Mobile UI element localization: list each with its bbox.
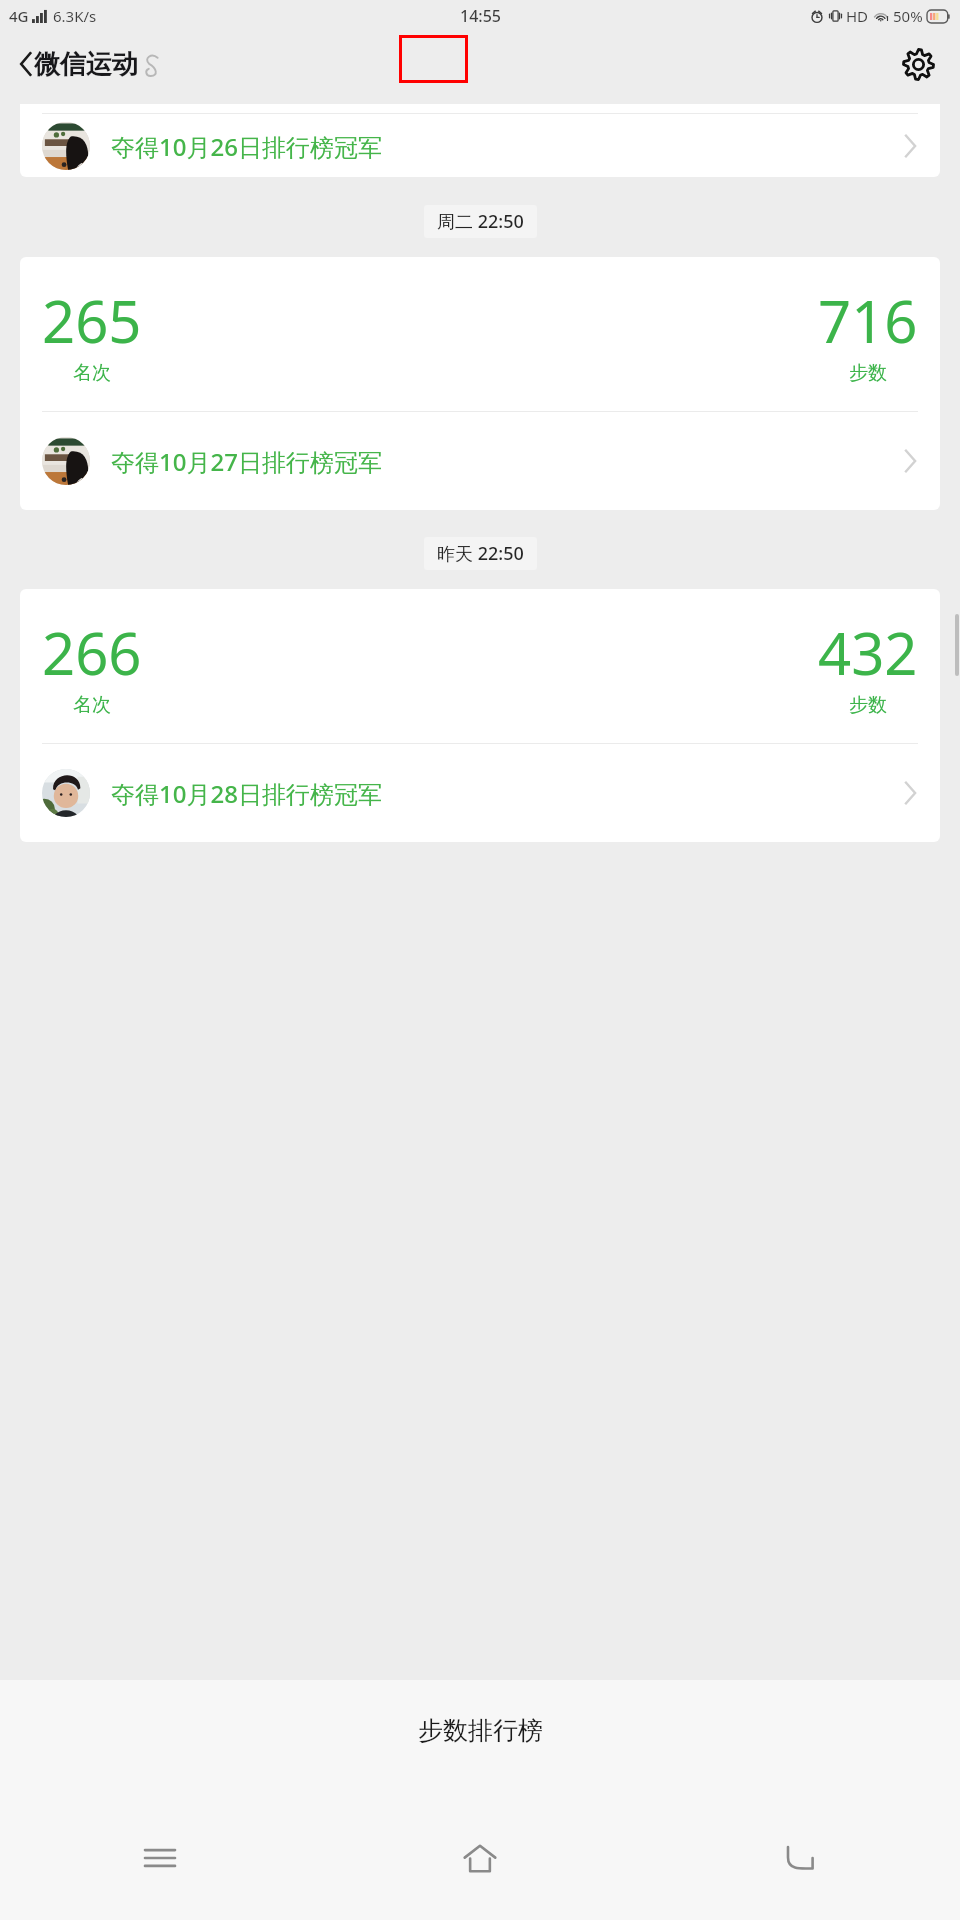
button[interactable]: Recents	[0, 1796, 320, 1920]
button[interactable]: 265	[20, 257, 940, 510]
button[interactable]: Back	[0, 38, 52, 90]
staticText: 步数排行榜	[418, 1715, 543, 1746]
button[interactable]: Home	[320, 1796, 640, 1920]
button[interactable]: 夺得10月26日排行榜冠军	[20, 104, 940, 177]
button[interactable]: 步数排行榜	[0, 1680, 960, 1796]
staticText: 微信运动	[34, 48, 138, 81]
staticText: 步数	[849, 693, 887, 717]
button[interactable]: Settings	[892, 38, 944, 90]
staticText: 夺得10月26日排行榜冠军	[111, 130, 382, 163]
staticText: 名次	[73, 693, 111, 717]
staticText: 265	[42, 281, 142, 360]
staticText: 昨天 22:50	[437, 541, 524, 566]
button[interactable]: Back	[640, 1796, 960, 1920]
staticText: 716	[818, 281, 918, 360]
staticText: 266	[42, 613, 142, 692]
staticText: 夺得10月28日排行榜冠军	[111, 777, 382, 810]
staticText: 14:55	[460, 5, 501, 27]
staticText: 步数	[849, 361, 887, 385]
button[interactable]: 266	[20, 589, 940, 842]
staticText: 4G	[9, 6, 29, 26]
staticText: 夺得10月27日排行榜冠军	[111, 445, 382, 478]
staticText: 周二 22:50	[437, 209, 524, 234]
staticText: 432	[818, 613, 918, 692]
staticText: 50%	[893, 6, 923, 26]
staticText: 6.3K/s	[53, 6, 97, 26]
staticText: 名次	[73, 361, 111, 385]
staticText: HD	[846, 6, 869, 26]
